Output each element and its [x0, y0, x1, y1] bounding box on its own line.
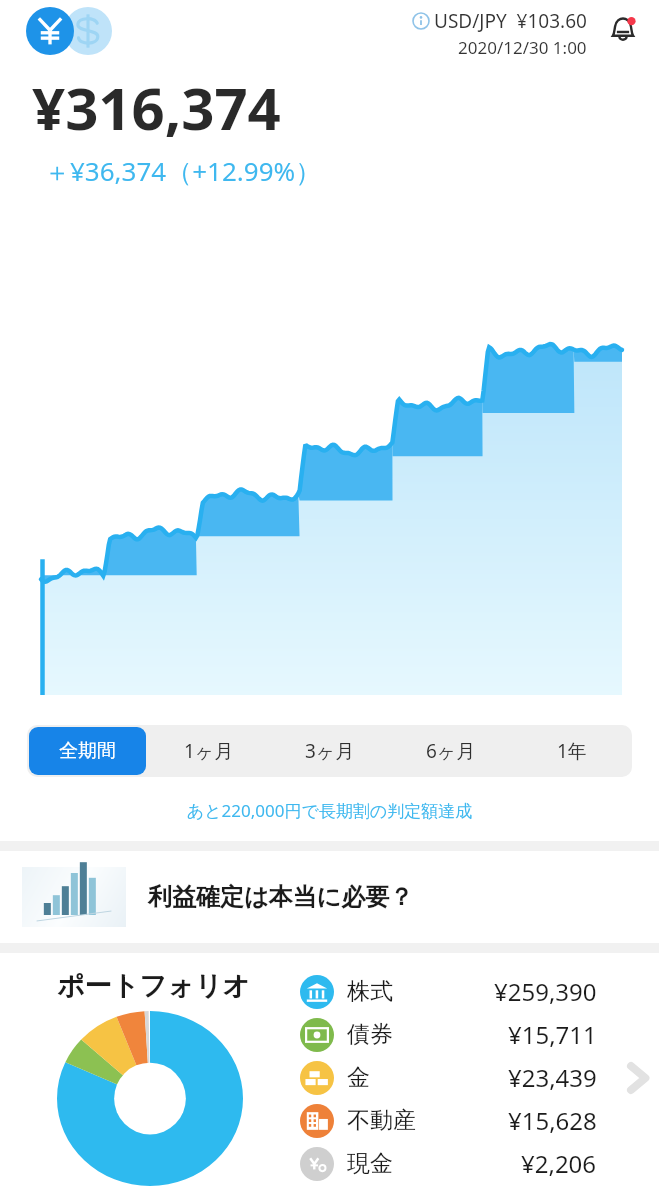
staticText: USD/JPY ¥103.60: [434, 8, 587, 34]
button[interactable]: 全期間: [29, 727, 146, 775]
button[interactable]: 1ヶ月: [150, 727, 267, 775]
button[interactable]: ポートフォリオ: [0, 953, 659, 1200]
staticText: ¥316,374: [32, 68, 281, 147]
staticText: ¥2,206: [521, 1147, 597, 1180]
staticText: 利益確定は本当に必要？: [148, 882, 414, 912]
staticText: 金: [347, 1063, 370, 1092]
staticText: 3ヶ月: [305, 738, 355, 764]
other: Open portfolio details: [619, 1048, 659, 1108]
button[interactable]: 1年: [513, 727, 630, 775]
staticText: ポートフォリオ: [57, 969, 250, 1003]
staticText: 1ヶ月: [184, 738, 234, 764]
staticText: ¥23,439: [508, 1061, 597, 1094]
staticText: ¥15,711: [508, 1018, 597, 1051]
button[interactable]: Currency toggle: [26, 7, 112, 55]
button[interactable]: 3ヶ月: [271, 727, 388, 775]
staticText: 不動産: [347, 1106, 416, 1135]
staticText: 全期間: [59, 739, 116, 763]
staticText: 株式: [347, 977, 393, 1006]
staticText: あと220,000円で長期割の判定額達成: [0, 799, 659, 822]
staticText: 6ヶ月: [426, 738, 476, 764]
staticText: 債券: [347, 1020, 393, 1049]
staticText: 2020/12/30 1:00: [458, 36, 587, 59]
staticText: ¥15,628: [508, 1104, 597, 1137]
button[interactable]: Notifications: [605, 12, 641, 48]
staticText: 現金: [347, 1149, 393, 1178]
staticText: 1年: [557, 738, 587, 764]
button[interactable]: 6ヶ月: [392, 727, 509, 775]
staticText: ＋¥36,374（+12.99%）: [44, 153, 322, 189]
button[interactable]: 利益確定は本当に必要？: [0, 851, 659, 943]
staticText: ¥259,390: [494, 975, 597, 1008]
